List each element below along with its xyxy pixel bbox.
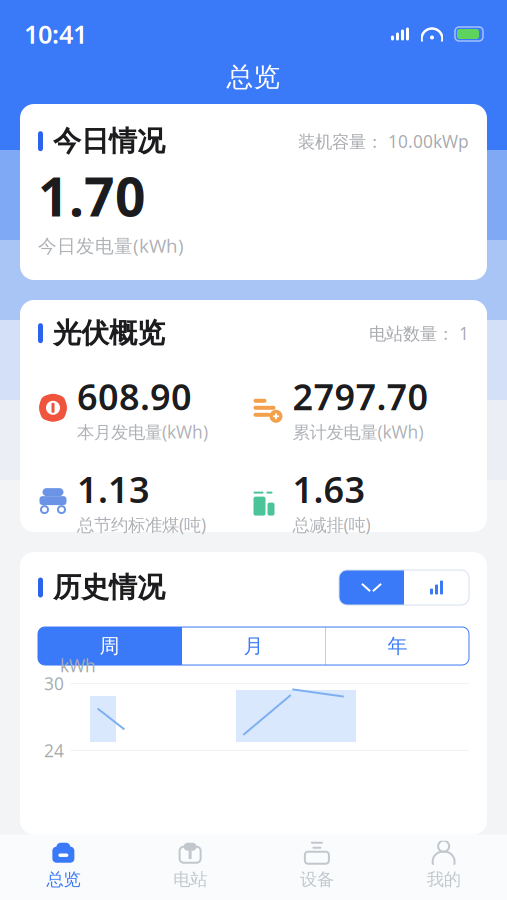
staticText: 设备 bbox=[300, 869, 334, 890]
button[interactable]: 月 bbox=[182, 627, 325, 665]
staticText: 1.70 bbox=[38, 160, 146, 231]
staticText: 装机容量： 10.00kWp bbox=[298, 130, 469, 153]
staticText: 1.13 bbox=[77, 465, 150, 513]
staticText: 光伏概览 bbox=[53, 316, 165, 350]
staticText: 总览 bbox=[46, 869, 80, 890]
staticText: 2797.70 bbox=[292, 372, 428, 420]
staticText: 总览 bbox=[226, 61, 280, 93]
staticText: 今日情况 bbox=[53, 124, 165, 158]
button[interactable]: Line chart bbox=[339, 570, 404, 605]
staticText: 10:41 bbox=[24, 17, 87, 51]
staticText: 24 bbox=[44, 739, 64, 762]
staticText: 总节约标准煤(吨) bbox=[77, 513, 206, 536]
button[interactable]: 周 bbox=[38, 627, 181, 665]
staticText: kWh bbox=[60, 654, 96, 677]
button[interactable]: 电站 bbox=[127, 835, 254, 900]
staticText: 累计发电量(kWh) bbox=[292, 420, 423, 443]
button[interactable]: 设备 bbox=[253, 835, 380, 900]
staticText: 608.90 bbox=[77, 372, 192, 420]
staticText: 月 bbox=[243, 634, 263, 658]
staticText: 1.63 bbox=[292, 465, 365, 513]
staticText: 总减排(吨) bbox=[292, 513, 370, 536]
staticText: 年 bbox=[387, 634, 407, 658]
button[interactable]: 总览 bbox=[0, 835, 127, 900]
staticText: 30 bbox=[44, 672, 64, 695]
staticText: 本月发电量(kWh) bbox=[77, 420, 208, 443]
button[interactable]: Bar chart bbox=[404, 570, 469, 605]
staticText: 我的 bbox=[427, 869, 461, 890]
staticText: 周 bbox=[99, 634, 119, 658]
staticText: 电站数量： 1 bbox=[369, 322, 469, 345]
button[interactable]: 我的 bbox=[380, 835, 507, 900]
staticText: 电站 bbox=[173, 869, 207, 890]
button[interactable]: 年 bbox=[326, 627, 469, 665]
staticText: 历史情况 bbox=[53, 570, 165, 605]
staticText: 今日发电量(kWh) bbox=[38, 233, 184, 258]
